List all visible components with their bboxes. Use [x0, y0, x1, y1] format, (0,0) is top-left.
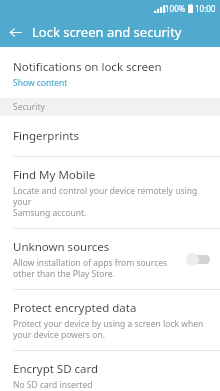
staticText: Find My Mobile: [13, 167, 96, 183]
staticText: Protect your device by using a screen lo…: [13, 318, 204, 340]
staticText: Unknown sources: [13, 239, 110, 255]
staticText: Protect encrypted data: [13, 300, 137, 316]
button[interactable]: Notifications on lock screen: [0, 47, 220, 98]
staticText: No SD card inserted: [13, 379, 93, 391]
button[interactable]: Back: [0, 17, 30, 47]
staticText: Fingerprints: [13, 128, 79, 144]
staticText: Show content: [13, 77, 68, 89]
button[interactable]: Protect encrypted data: [0, 290, 220, 350]
staticText: 100%: [165, 3, 186, 14]
button[interactable]: Fingerprints: [0, 116, 220, 156]
staticText: 10:00: [195, 3, 216, 14]
button[interactable]: Unknown sources toggle: [186, 252, 212, 266]
button[interactable]: Find My Mobile: [0, 157, 220, 228]
button[interactable]: Encrypt SD card: [0, 351, 220, 391]
staticText: Lock screen and security: [32, 23, 182, 41]
staticText: Allow installation of apps from sources …: [13, 257, 168, 279]
staticText: Encrypt SD card: [13, 361, 99, 377]
button[interactable]: Unknown sources: [0, 229, 220, 289]
staticText: Notifications on lock screen: [13, 59, 162, 75]
staticText: Security: [13, 101, 45, 113]
staticText: Locate and control your device remotely …: [13, 185, 208, 218]
